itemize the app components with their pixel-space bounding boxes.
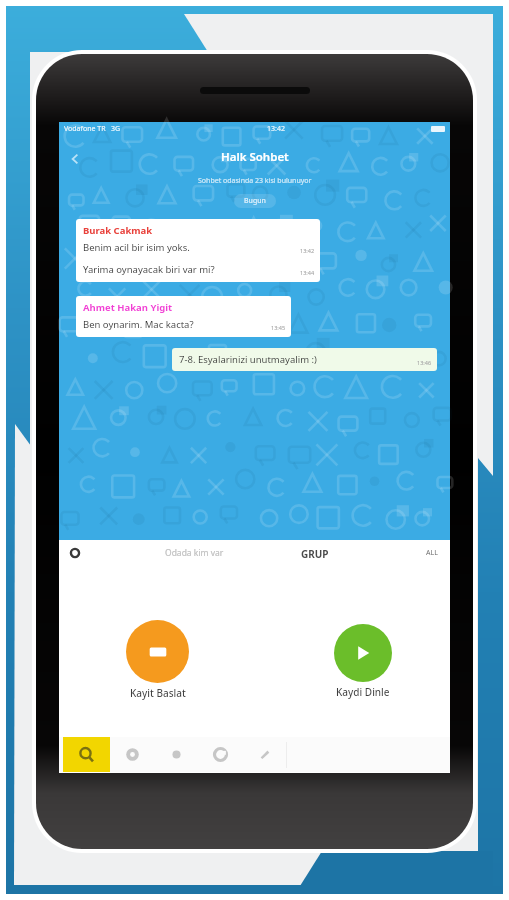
staticText: 3G: [111, 124, 121, 134]
button[interactable]: Kaydi Dinle: [304, 624, 422, 699]
staticText: Yarima oynayacak biri var mi?: [83, 263, 300, 276]
button[interactable]: Back: [65, 149, 85, 169]
staticText: Kayit Baslat: [130, 686, 186, 700]
staticText: GRUP: [301, 547, 329, 561]
button[interactable]: Add: [154, 737, 198, 772]
button[interactable]: Kayit Baslat: [96, 620, 219, 700]
button[interactable]: Refresh: [198, 737, 242, 772]
button[interactable]: ALL: [426, 548, 438, 558]
staticText: 13:46: [417, 359, 432, 366]
staticText: Benim acil bir isim yoks.: [83, 241, 300, 254]
staticText: 13:42: [267, 124, 285, 134]
button[interactable]: Ahmet Hakan Yigit: [76, 296, 291, 337]
button[interactable]: Search: [63, 737, 110, 772]
button[interactable]: Burak Cakmak: [76, 219, 320, 282]
staticText: 13:42: [300, 247, 315, 254]
staticText: Sohbet odasinda 23 kisi bulunuyor: [198, 176, 312, 186]
staticText: Ben oynarim. Mac kacta?: [83, 318, 271, 331]
staticText: 13:44: [300, 269, 315, 276]
button[interactable]: Profile: [110, 737, 154, 772]
button[interactable]: Attach: [69, 547, 81, 559]
staticText: Vodafone TR: [64, 124, 106, 134]
staticText: Halk Sohbet: [221, 149, 289, 165]
staticText: Kaydi Dinle: [336, 685, 390, 699]
button[interactable]: Notes: [242, 737, 286, 772]
staticText: Bugun: [244, 196, 266, 206]
staticText: 7-8. Esyalarinizi unutmayalim :): [179, 353, 417, 366]
staticText: ALL: [426, 548, 438, 558]
button[interactable]: 7-8. Esyalarinizi unutmayalim :): [172, 348, 437, 371]
staticText: 13:45: [271, 324, 286, 331]
staticText: Odada kim var: [165, 547, 224, 559]
staticText: Ahmet Hakan Yigit: [83, 301, 173, 314]
button[interactable]: GRUP: [301, 547, 329, 561]
staticText: Burak Cakmak: [83, 224, 153, 237]
